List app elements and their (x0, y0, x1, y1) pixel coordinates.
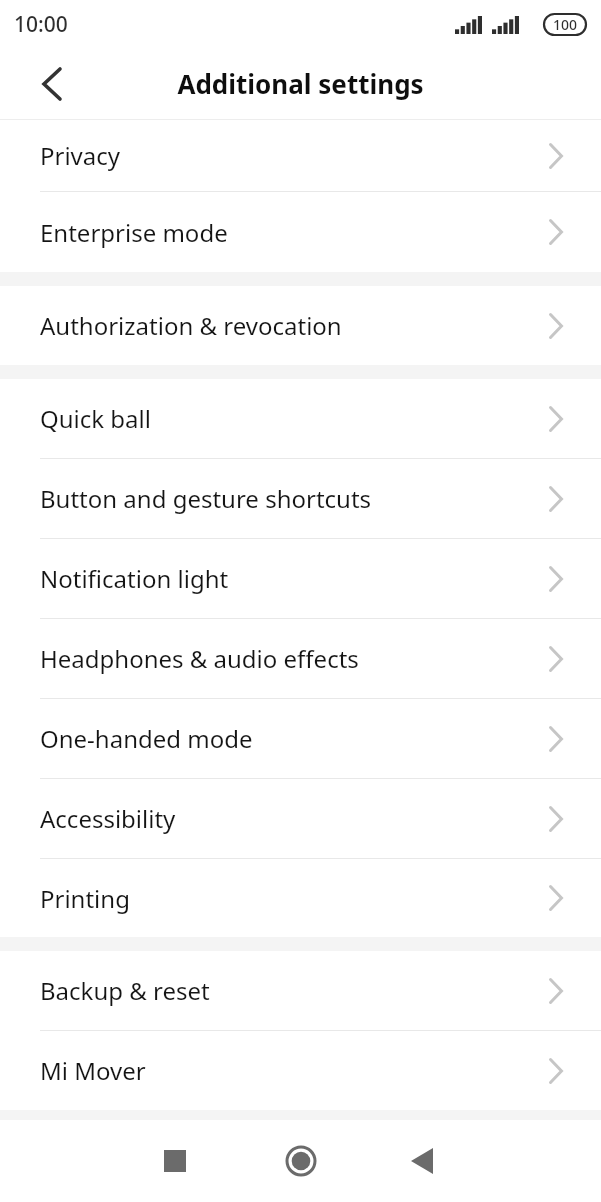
staticText: Notification light (40, 562, 549, 595)
staticText: 10:00 (14, 10, 68, 39)
staticText: Printing (40, 882, 549, 915)
button[interactable]: Privacy (0, 120, 601, 191)
staticText: Authorization & revocation (40, 309, 549, 342)
button[interactable]: Printing (0, 859, 601, 937)
button[interactable]: One-handed mode (0, 699, 601, 778)
staticText: Headphones & audio effects (40, 642, 549, 675)
staticText: Quick ball (40, 402, 549, 435)
button[interactable]: Headphones & audio effects (0, 619, 601, 698)
button[interactable]: Back (394, 1133, 450, 1189)
button[interactable]: Authorization & revocation (0, 286, 601, 365)
button[interactable]: Button and gesture shortcuts (0, 459, 601, 538)
staticText: One-handed mode (40, 722, 549, 755)
button[interactable]: Quick ball (0, 379, 601, 458)
staticText: Additional settings (177, 66, 424, 101)
staticText: Privacy (40, 139, 549, 172)
staticText: Backup & reset (40, 974, 549, 1007)
staticText: 100 (553, 15, 578, 34)
button[interactable]: Mi Mover (0, 1031, 601, 1110)
button[interactable]: Notification light (0, 539, 601, 618)
button[interactable]: Recents (147, 1133, 203, 1189)
staticText: Accessibility (40, 802, 549, 835)
staticText: Enterprise mode (40, 216, 549, 249)
staticText: Button and gesture shortcuts (40, 482, 549, 515)
button[interactable]: Backup & reset (0, 951, 601, 1030)
staticText: Mi Mover (40, 1054, 549, 1087)
button[interactable]: Back (24, 56, 80, 112)
button[interactable]: Home (273, 1133, 329, 1189)
button[interactable]: Accessibility (0, 779, 601, 858)
button[interactable]: Enterprise mode (0, 192, 601, 272)
